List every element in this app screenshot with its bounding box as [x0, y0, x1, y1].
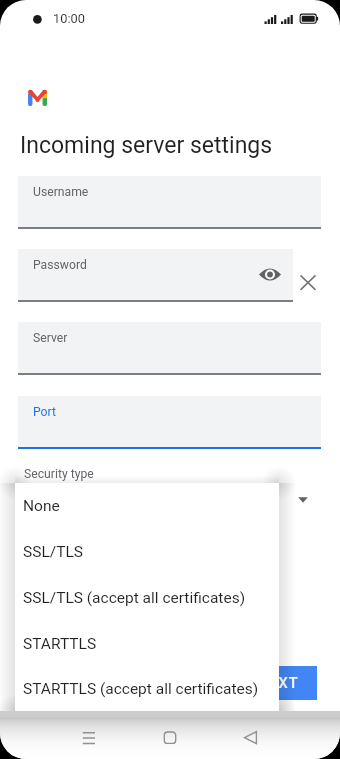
button[interactable]: Back [236, 723, 266, 753]
button[interactable]: Open security type menu [292, 489, 314, 511]
button[interactable]: STARTTLS (accept all certificates) [15, 667, 279, 711]
button[interactable]: Password [18, 249, 293, 302]
button[interactable]: Home [155, 723, 185, 753]
staticText: Username [33, 185, 89, 199]
button[interactable]: Show password [259, 267, 281, 282]
button[interactable]: NEXT [239, 666, 317, 700]
button[interactable]: SSL/TLS [15, 529, 279, 575]
staticText: SSL/TLS [23, 543, 83, 561]
button[interactable]: SSL/TLS (accept all certificates) [15, 575, 279, 621]
button[interactable]: None [15, 483, 279, 529]
staticText: NEXT [258, 675, 299, 692]
staticText: Server [33, 331, 68, 345]
staticText: SSL/TLS (accept all certificates) [23, 589, 246, 607]
staticText: Port [33, 405, 56, 419]
button[interactable]: Clear [296, 271, 320, 295]
button[interactable]: STARTTLS [15, 621, 279, 667]
staticText: Incoming server settings [20, 132, 273, 159]
staticText: Security type [24, 467, 94, 481]
staticText: 10:00 [53, 11, 85, 26]
button[interactable]: Server [18, 322, 321, 375]
button[interactable]: Port [18, 396, 321, 449]
button[interactable]: Recent apps [74, 723, 104, 753]
staticText: None [23, 497, 60, 515]
staticText: Password [33, 258, 87, 272]
button[interactable]: Username [18, 176, 321, 229]
staticText: STARTTLS (accept all certificates) [23, 680, 259, 698]
staticText: STARTTLS [23, 635, 97, 653]
